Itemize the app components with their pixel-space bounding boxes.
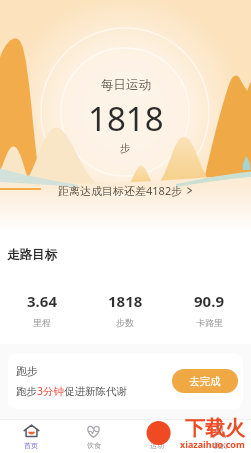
staticText: 走路目标: [7, 247, 57, 263]
button[interactable]: 去完成: [172, 369, 238, 393]
staticText: 3.64: [27, 291, 57, 311]
staticText: 1818: [108, 291, 143, 311]
staticText: 跑步3分钟促进新陈代谢: [16, 384, 128, 398]
staticText: 运动: [150, 441, 164, 450]
button[interactable]: 距离达成目标还差4182步: [58, 183, 193, 198]
staticText: 1818: [88, 96, 164, 141]
staticText: 跑步: [16, 364, 38, 378]
button[interactable]: 饮食: [62, 420, 125, 450]
staticText: 首页: [24, 441, 38, 450]
staticText: xiazaihuo.com: [180, 438, 245, 450]
button[interactable]: 首页: [0, 420, 62, 450]
button[interactable]: 我的: [188, 420, 251, 450]
staticText: 里程: [33, 317, 51, 328]
staticText: 90.9: [194, 291, 224, 311]
staticText: 步数: [116, 317, 134, 328]
staticText: 我的: [213, 441, 227, 450]
button[interactable]: 运动: [125, 420, 188, 450]
staticText: 步: [120, 142, 131, 155]
staticText: 去完成: [189, 375, 221, 388]
staticText: 卡路里: [196, 317, 223, 328]
staticText: 每日运动: [101, 77, 151, 93]
staticText: 距离达成目标还差4182步: [58, 183, 183, 198]
button[interactable]: 跑步: [8, 353, 243, 409]
staticText: 饮食: [87, 441, 101, 450]
staticText: 下载火: [185, 416, 245, 441]
